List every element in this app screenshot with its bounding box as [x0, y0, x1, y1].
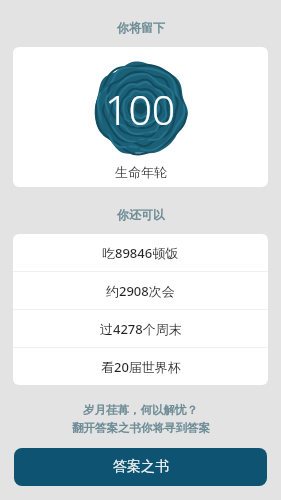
staticText: 约2908次会 [106, 282, 175, 300]
staticText: 翻开答案之书你将寻到答案 [72, 421, 210, 435]
button[interactable]: 看20届世界杯 [13, 348, 268, 385]
staticText: 看20届世界杯 [101, 358, 181, 376]
staticText: 吃89846顿饭 [102, 244, 179, 262]
button[interactable]: 吃89846顿饭 [13, 234, 268, 271]
staticText: 100 [105, 81, 176, 137]
button[interactable]: 过4278个周末 [13, 310, 268, 347]
staticText: 过4278个周末 [100, 320, 182, 338]
staticText: 岁月荏苒，何以解忧？ [83, 403, 198, 417]
button[interactable]: 约2908次会 [13, 272, 268, 309]
button[interactable]: 答案之书 [14, 448, 267, 486]
staticText: 答案之书 [113, 458, 169, 476]
staticText: 生命年轮 [115, 164, 167, 180]
staticText: 你将留下 [117, 20, 165, 35]
button[interactable]: 100 [13, 47, 268, 187]
staticText: 你还可以 [117, 207, 165, 222]
